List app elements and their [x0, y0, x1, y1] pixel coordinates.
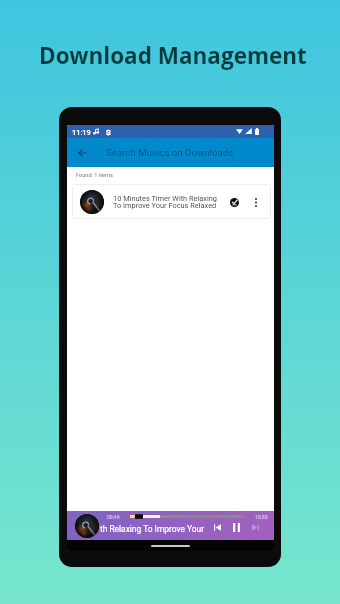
- staticText: 11:19: [72, 128, 91, 137]
- button[interactable]: 10 Minutes Timer With Relaxing To Improv…: [72, 184, 271, 219]
- staticText: Search Musics on Downloads: [106, 147, 234, 158]
- button[interactable]: Downloaded: [227, 195, 241, 209]
- button[interactable]: 00:49: [67, 511, 274, 540]
- staticText: th Relaxing To Improve Your F: [100, 524, 204, 534]
- staticText: S: [106, 128, 111, 137]
- button[interactable]: Previous: [210, 520, 225, 535]
- button[interactable]: Next: [248, 520, 263, 535]
- staticText: 10 Minutes Timer With Relaxing To Improv…: [113, 194, 220, 210]
- staticText: Download Management: [3, 40, 340, 71]
- staticText: 10:55: [255, 514, 268, 520]
- button[interactable]: Back: [70, 138, 95, 167]
- staticText: Found: 1 items: [76, 172, 113, 179]
- button[interactable]: Pause: [229, 520, 244, 535]
- button[interactable]: More options: [249, 195, 263, 209]
- staticText: 00:49: [107, 514, 120, 520]
